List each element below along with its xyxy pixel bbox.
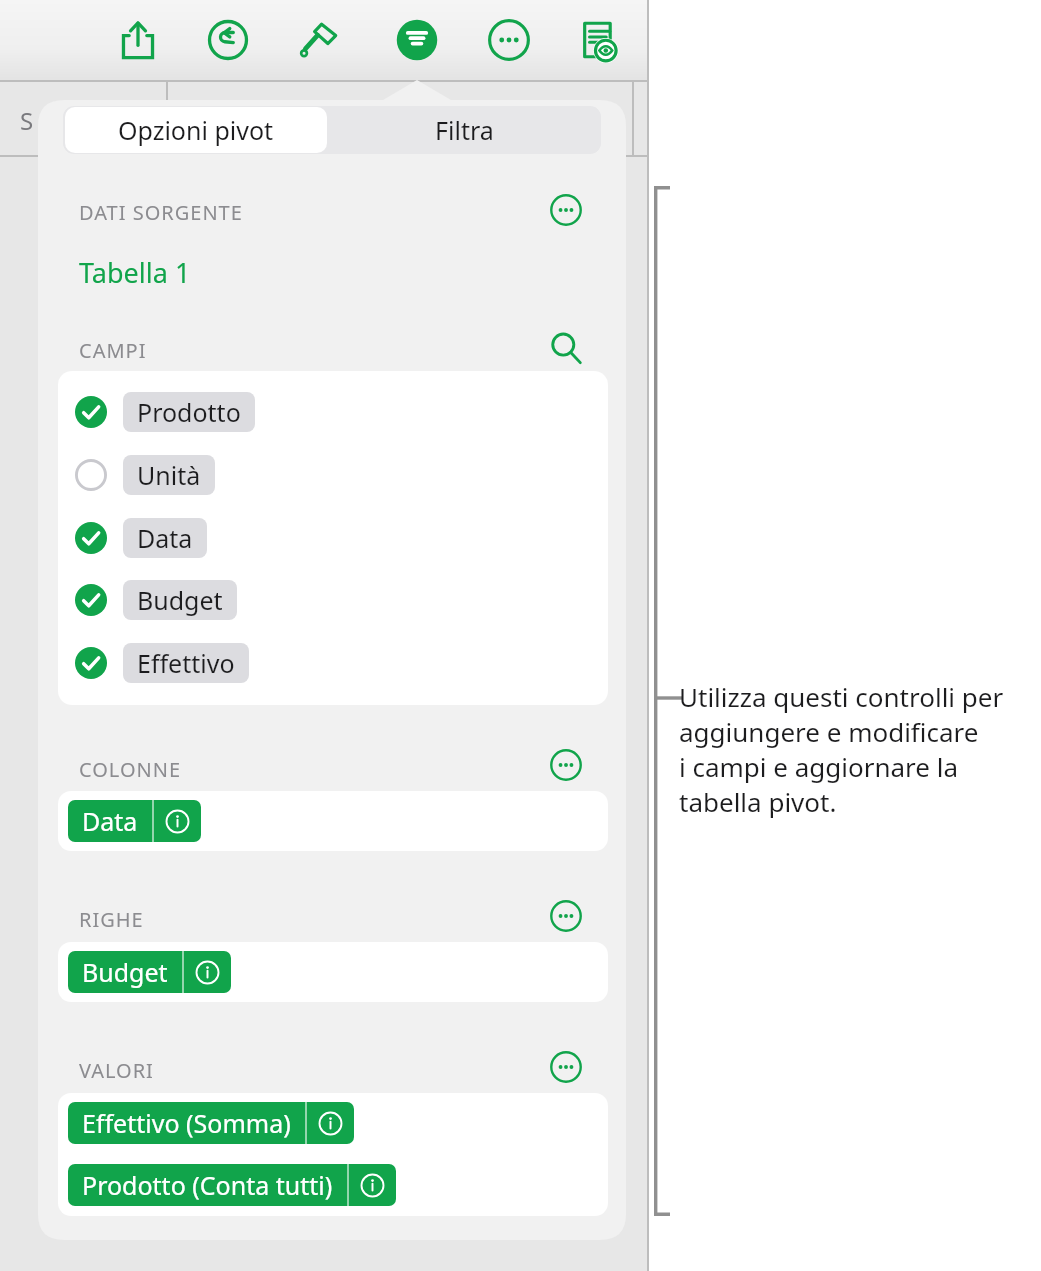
staticText: Utilizza questi controlli per	[679, 679, 1004, 714]
staticText: aggiungere e modificare	[679, 714, 979, 749]
button[interactable]: Prodotto	[58, 385, 608, 438]
staticText: Prodotto	[137, 395, 241, 429]
button[interactable]: Righe options	[546, 896, 586, 936]
button[interactable]: Format	[292, 13, 346, 67]
staticText: tabella pivot.	[679, 784, 837, 819]
staticText: Opzioni pivot	[118, 113, 274, 147]
button[interactable]: Tabella 1	[79, 254, 191, 291]
staticText: i campi e aggiornare la	[679, 749, 959, 784]
staticText: Unità	[137, 458, 201, 492]
staticText: S	[20, 104, 34, 137]
button[interactable]: Budget	[58, 573, 608, 626]
button[interactable]: Effettivo	[58, 636, 608, 689]
staticText: Effettivo	[137, 646, 235, 680]
button[interactable]: Search fields	[544, 326, 588, 370]
button[interactable]: Data info	[154, 800, 201, 842]
button[interactable]: More options	[482, 13, 536, 67]
staticText: Effettivo (Somma)	[82, 1106, 291, 1140]
button[interactable]: Share	[111, 13, 165, 67]
button[interactable]: Budget	[68, 951, 231, 993]
button[interactable]: Opzioni pivot	[65, 107, 327, 153]
button[interactable]: Document setup	[570, 13, 624, 67]
button[interactable]: Data	[58, 511, 608, 564]
staticText: Data	[137, 521, 193, 555]
staticText: RIGHE	[79, 906, 144, 933]
button[interactable]: Budget info	[184, 951, 231, 993]
button[interactable]: Effettivo (Somma)	[68, 1102, 354, 1144]
button[interactable]: Pivot options	[390, 13, 444, 67]
button[interactable]: Filtra	[330, 107, 598, 153]
button[interactable]: Valori options	[546, 1047, 586, 1087]
staticText: Filtra	[435, 113, 494, 147]
staticText: Budget	[82, 955, 168, 989]
button[interactable]: Effettivo (Somma) info	[307, 1102, 354, 1144]
staticText: Data	[82, 804, 138, 838]
staticText: DATI SORGENTE	[79, 199, 243, 226]
button[interactable]: Unità	[58, 448, 608, 501]
button[interactable]: Prodotto (Conta tutti)	[68, 1164, 396, 1206]
staticText: Budget	[137, 583, 223, 617]
staticText: Prodotto (Conta tutti)	[82, 1168, 333, 1202]
button[interactable]: Data	[68, 800, 201, 842]
staticText: VALORI	[79, 1057, 154, 1084]
button[interactable]: Dati sorgente options	[546, 190, 586, 230]
button[interactable]: Prodotto (Conta tutti) info	[349, 1164, 396, 1206]
button[interactable]: Colonne options	[546, 745, 586, 785]
staticText: CAMPI	[79, 337, 147, 364]
button[interactable]: Undo	[201, 13, 255, 67]
staticText: COLONNE	[79, 756, 182, 783]
